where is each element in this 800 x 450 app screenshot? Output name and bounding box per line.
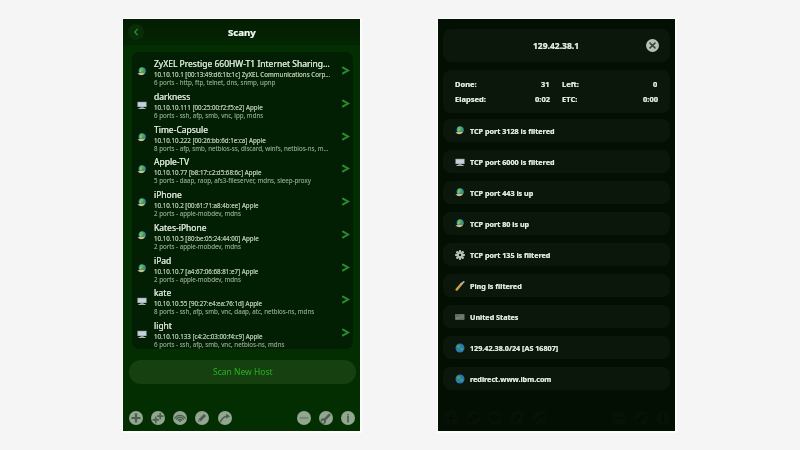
staticText: Time-Capsule xyxy=(154,124,209,136)
button[interactable]: light xyxy=(132,319,353,349)
staticText: 10.10.10.5 [80:be:05:24:44:00] Apple xyxy=(154,234,259,242)
staticText: 2 ports - apple-mobdev, mdns xyxy=(154,275,241,283)
staticText: 10.10.10.7 [a4:67:06:68:81:e7] Apple xyxy=(154,267,259,275)
button[interactable]: Back xyxy=(128,24,144,40)
staticText: Left: xyxy=(562,79,579,89)
staticText: kate xyxy=(154,287,172,299)
button[interactable]: Share xyxy=(218,411,232,425)
button[interactable]: Add host xyxy=(129,411,143,425)
staticText: 10.10.10.133 [c4:2c:03:00:f4:c9] Apple xyxy=(154,332,263,340)
staticText: 6 ports - ssh, afp, smb, vnc, ipp, mdns xyxy=(154,111,264,119)
staticText: 0:00 xyxy=(643,94,658,104)
staticText: 5 ports - daap, raop, afs3-fileserver, m… xyxy=(154,176,311,184)
staticText: TCP port 80 is up xyxy=(470,219,530,229)
staticText: 6 ports - ssh, afp, smb, vnc, netbios-ns… xyxy=(154,340,285,348)
staticText: Done: xyxy=(455,79,477,89)
staticText: iPad xyxy=(154,255,172,267)
button[interactable]: Wi-Fi scan xyxy=(173,411,187,425)
button[interactable]: TCP port 3128 is filtered xyxy=(443,119,670,142)
button[interactable]: Apple-TV xyxy=(132,155,353,185)
staticText: Scan New Host xyxy=(213,366,273,378)
staticText: TCP port 3128 is filtered xyxy=(470,126,555,136)
staticText: Elapsed: xyxy=(455,94,486,104)
button[interactable]: Info xyxy=(341,411,355,425)
button[interactable]: Close xyxy=(646,39,659,52)
staticText: ZyXEL Prestige 660HW-T1 Internet Sharing… xyxy=(154,58,332,70)
button[interactable]: Kates-iPhone xyxy=(132,221,353,251)
staticText: TCP port 443 is up xyxy=(470,188,534,198)
staticText: redirect.www.ibm.com xyxy=(470,374,552,384)
button[interactable]: iPhone xyxy=(132,188,353,218)
staticText: 10.10.10.55 [90:27:e4:ea:76:1d] Apple xyxy=(154,299,263,307)
button[interactable]: TCP port 80 is up xyxy=(443,212,670,235)
staticText: TCP port 6000 is filtered xyxy=(470,157,555,167)
staticText: light xyxy=(154,320,172,332)
staticText: 10.10.10.222 [00:26:bb:6d:1e:ca] Apple xyxy=(154,136,266,144)
button[interactable]: iPad xyxy=(132,254,353,284)
button[interactable]: ZyXEL Prestige 660HW-T1 Internet Sharing… xyxy=(132,57,353,87)
staticText: 2 ports - apple-mobdev, mdns xyxy=(154,209,241,217)
staticText: iPhone xyxy=(154,189,182,201)
staticText: United States xyxy=(470,312,519,322)
button[interactable]: Edit xyxy=(195,411,209,425)
staticText: 10.10.10.77 [b8:17:c2:d5:68:6c] Apple xyxy=(154,168,262,176)
staticText: Apple-TV xyxy=(154,156,190,168)
staticText: 0 xyxy=(653,79,658,89)
button[interactable]: United States xyxy=(443,305,670,328)
staticText: 10.10.10.111 [00:25:00:f2:f5:e2] Apple xyxy=(154,103,263,111)
staticText: Ping is filtered xyxy=(470,281,522,291)
button[interactable]: darkness xyxy=(132,90,353,120)
staticText: 129.42.38.0/24 [AS 16807] xyxy=(470,343,559,353)
button[interactable]: kate xyxy=(132,286,353,316)
staticText: 0:02 xyxy=(535,94,550,104)
staticText: darkness xyxy=(154,91,191,103)
staticText: 6 ports - http, ftp, telnet, dns, snmp, … xyxy=(154,78,276,86)
button[interactable]: Settings xyxy=(319,411,333,425)
staticText: 10.10.10.1 [00:13:49:d6:1b:1c] ZyXEL Com… xyxy=(154,70,331,78)
staticText: 8 ports - afp, smb, netbios-ss, discard,… xyxy=(154,144,329,152)
staticText: 8 ports - ssh, afp, smb, vnc, daap, atc,… xyxy=(154,307,315,315)
button[interactable]: Add range xyxy=(151,411,165,425)
button[interactable]: TCP port 6000 is filtered xyxy=(443,150,670,173)
button[interactable]: Ports xyxy=(297,411,311,425)
staticText: TCP port 135 is filtered xyxy=(470,250,551,260)
button[interactable]: TCP port 443 is up xyxy=(443,181,670,204)
staticText: 10.10.10.2 [00:61:71:a8:4b:ee] Apple xyxy=(154,201,259,209)
staticText: Scany xyxy=(228,26,256,39)
button[interactable]: redirect.www.ibm.com xyxy=(443,367,670,390)
staticText: 129.42.38.1 xyxy=(533,40,580,52)
staticText: Kates-iPhone xyxy=(154,222,207,234)
button[interactable]: Time-Capsule xyxy=(132,123,353,153)
button[interactable]: Scan New Host xyxy=(129,360,356,384)
staticText: 2 ports - apple-mobdev, mdns xyxy=(154,242,241,250)
staticText: 31 xyxy=(541,79,550,89)
button[interactable]: 129.42.38.0/24 [AS 16807] xyxy=(443,336,670,359)
staticText: ETC: xyxy=(562,94,578,104)
button[interactable]: TCP port 135 is filtered xyxy=(443,243,670,266)
button[interactable]: Ping is filtered xyxy=(443,274,670,297)
